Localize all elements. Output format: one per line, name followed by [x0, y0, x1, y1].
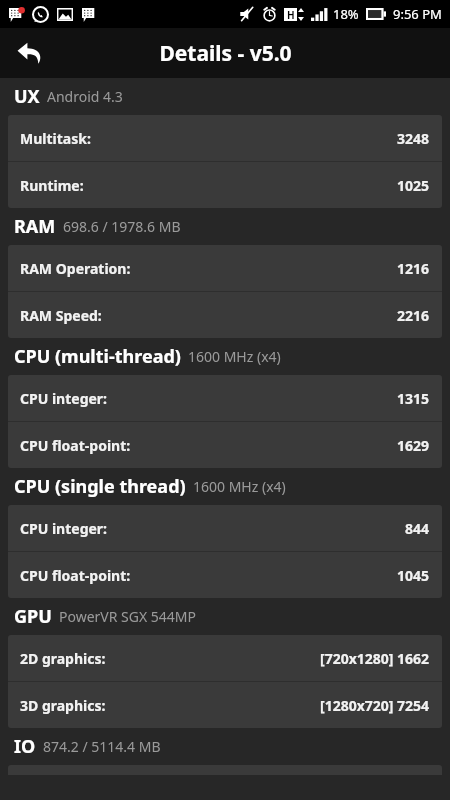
staticText: Details - v5.0	[159, 39, 292, 68]
staticText: RAM Operation:	[20, 259, 131, 278]
staticText: CPU integer:	[20, 519, 108, 538]
staticText: UX	[14, 84, 40, 109]
button[interactable]: Back	[6, 29, 54, 77]
staticText: 3248	[397, 129, 430, 148]
staticText: CPU (single thread)	[14, 474, 186, 499]
staticText: RAM Speed:	[20, 306, 102, 325]
staticText: 1315	[397, 389, 430, 408]
button[interactable]: RAM Operation:	[8, 245, 442, 291]
staticText: 1216	[397, 259, 430, 278]
button[interactable]: CPU integer:	[8, 375, 442, 421]
staticText: IO	[14, 734, 36, 759]
staticText: 1629	[397, 436, 430, 455]
staticText: 1600 MHz (x4)	[188, 347, 281, 366]
staticText: 3D graphics:	[20, 696, 106, 715]
button[interactable]: Multitask:	[8, 115, 442, 161]
staticText: 874.2 / 5114.4 MB	[43, 737, 161, 756]
button[interactable]: RAM Speed:	[8, 292, 442, 338]
staticText: CPU float-point:	[20, 436, 131, 455]
staticText: CPU integer:	[20, 389, 108, 408]
staticText: CPU float-point:	[20, 566, 131, 585]
staticText: 1600 MHz (x4)	[193, 477, 286, 496]
staticText: Runtime:	[20, 176, 84, 195]
staticText: Android 4.3	[47, 87, 123, 106]
staticText: 2D graphics:	[20, 649, 106, 668]
staticText: Multitask:	[20, 129, 91, 148]
staticText: 2216	[397, 306, 430, 325]
button[interactable]: CPU float-point:	[8, 422, 442, 468]
staticText: 1045	[397, 566, 430, 585]
button[interactable]: CPU float-point:	[8, 552, 442, 598]
button[interactable]: Runtime:	[8, 162, 442, 208]
staticText: RAM	[14, 214, 56, 239]
staticText: 9:56 PM	[393, 5, 442, 23]
staticText: GPU	[14, 604, 52, 629]
staticText: CPU (multi-thread)	[14, 344, 181, 369]
button[interactable]: 3D graphics:	[8, 682, 442, 728]
button[interactable]: 2D graphics:	[8, 635, 442, 681]
staticText: 698.6 / 1978.6 MB	[63, 217, 181, 236]
staticText: H	[287, 8, 295, 21]
button[interactable]: CPU integer:	[8, 505, 442, 551]
staticText: 18%	[333, 5, 359, 23]
staticText: PowerVR SGX 544MP	[59, 607, 197, 626]
staticText: [1280x720] 7254	[320, 696, 430, 715]
staticText: 844	[405, 519, 430, 538]
staticText: 1025	[397, 176, 430, 195]
staticText: [720x1280] 1662	[320, 649, 430, 668]
